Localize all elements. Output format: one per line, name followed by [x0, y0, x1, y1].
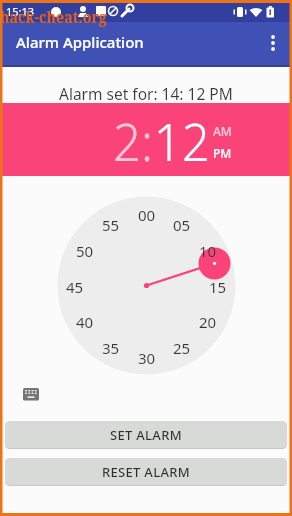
staticText: Alarm set for: 14: 12 PM [59, 83, 233, 104]
staticText: 55 [102, 215, 120, 233]
staticText: 45 [66, 277, 84, 295]
staticText: 12 [154, 105, 210, 176]
staticText: 20 [199, 312, 217, 330]
button[interactable] [262, 25, 288, 59]
staticText: 15 [209, 277, 227, 295]
staticText: 15:13 [6, 4, 35, 19]
button[interactable]: RESET ALARM [5, 458, 287, 485]
staticText: 00 [138, 205, 156, 223]
staticText: 10 [199, 241, 217, 259]
staticText: 05 [173, 215, 191, 233]
staticText: 50 [76, 241, 94, 259]
staticText: hack-cheat.org [0, 6, 108, 28]
staticText: RESET ALARM [102, 463, 190, 481]
staticText: 25 [173, 338, 191, 356]
staticText: SET ALARM [110, 426, 182, 444]
button[interactable] [19, 384, 43, 404]
staticText: 2: [113, 105, 154, 176]
staticText: AM [213, 123, 232, 139]
staticText: 30 [138, 348, 156, 366]
button[interactable]: SET ALARM [5, 421, 287, 448]
staticText: 40 [76, 312, 94, 330]
staticText: PM [213, 145, 232, 161]
staticText: 35 [102, 338, 120, 356]
staticText: Alarm Application [16, 32, 144, 52]
